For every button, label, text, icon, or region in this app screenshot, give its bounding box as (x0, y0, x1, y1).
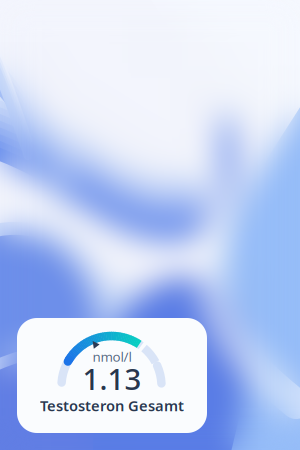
staticText: nmol/l (92, 348, 131, 365)
button[interactable]: nmol/l (17, 318, 207, 433)
staticText: 1.13 (82, 359, 141, 398)
staticText: Testosteron Gesamt (40, 396, 184, 415)
